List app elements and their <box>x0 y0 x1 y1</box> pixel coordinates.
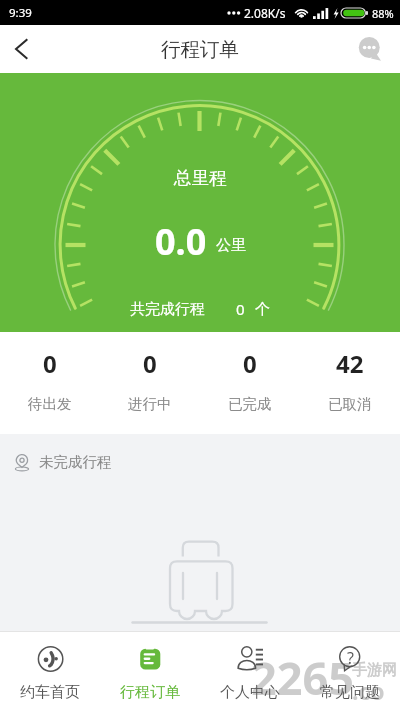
button[interactable]: ? <box>300 632 400 702</box>
staticText: 待出发 <box>28 395 72 413</box>
button[interactable]: 0 <box>100 332 200 413</box>
staticText: 已取消 <box>328 395 372 413</box>
staticText: 88% <box>372 6 394 21</box>
staticText: .com <box>352 675 400 711</box>
button[interactable]: 0 <box>200 332 300 413</box>
staticText: 0 <box>43 347 57 380</box>
button[interactable]: 个人中心 <box>200 632 300 702</box>
staticText: 手游网 <box>352 661 397 680</box>
staticText: ? <box>347 647 354 669</box>
button[interactable]: 0 <box>0 332 100 413</box>
staticText: 约车首页 <box>20 683 80 702</box>
button[interactable]: Messages <box>341 25 400 73</box>
staticText: 常见问题 <box>320 683 380 702</box>
staticText: 总里程 <box>174 167 227 189</box>
button[interactable]: 未完成行程 <box>15 434 400 490</box>
staticText: 未完成行程 <box>39 453 112 471</box>
staticText: 9:39 <box>9 5 32 21</box>
staticText: 已完成 <box>228 395 272 413</box>
staticText: 0 <box>143 347 157 380</box>
staticText: 行程订单 <box>161 37 239 62</box>
staticText: 个 <box>255 300 270 319</box>
staticText: 2.08K/s <box>244 5 286 21</box>
staticText: 公里 <box>216 236 246 255</box>
staticText: 个人中心 <box>220 683 280 702</box>
staticText: 0 <box>236 299 245 319</box>
staticText: 进行中 <box>128 395 172 413</box>
staticText: 42 <box>336 347 364 380</box>
staticText: 共完成行程 <box>130 300 205 319</box>
button[interactable]: 约车首页 <box>0 632 100 702</box>
staticText: 行程订单 <box>120 683 180 702</box>
staticText: 0.0 <box>155 217 207 266</box>
button[interactable]: Back <box>0 27 44 71</box>
button[interactable]: 行程订单 <box>100 632 200 702</box>
staticText: 2265 <box>251 647 354 708</box>
staticText: 0 <box>243 347 257 380</box>
button[interactable]: 42 <box>300 332 400 413</box>
